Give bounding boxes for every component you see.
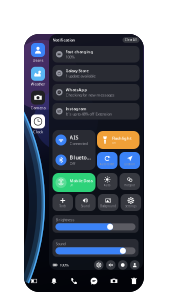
- staticText: WhatsApp: [65, 87, 87, 92]
- staticText: Bluetooth: [69, 154, 92, 161]
- staticText: Weather: [30, 81, 45, 87]
- button[interactable]: Fast charging: [52, 46, 139, 62]
- staticText: Fast charging: [65, 49, 93, 54]
- button[interactable]: Auto: [97, 173, 117, 190]
- button[interactable]: Flashlight: [97, 131, 139, 149]
- button[interactable]: Notifications: [44, 270, 64, 292]
- staticText: Clear All: [125, 38, 137, 42]
- staticText: Sound: [81, 204, 90, 208]
- staticText: On: [69, 183, 73, 187]
- button[interactable]: Users: [29, 43, 47, 63]
- staticText: 100%: [59, 262, 68, 268]
- staticText: Instagram: [65, 106, 86, 111]
- staticText: On: [112, 141, 116, 144]
- button[interactable]: Sound: [75, 194, 96, 211]
- button[interactable]: Torch: [52, 194, 73, 211]
- button[interactable]: Clear All: [122, 37, 139, 43]
- button[interactable]: Weather: [29, 67, 47, 87]
- staticText: Off: [69, 161, 75, 166]
- staticText: Mobile Data: [69, 178, 92, 183]
- button[interactable]: Background: [98, 194, 118, 211]
- button[interactable]: Autorotate: [97, 152, 117, 169]
- staticText: Checking for new messages: [65, 92, 114, 97]
- staticText: Notification: [52, 37, 75, 43]
- button[interactable]: Delete: [124, 270, 144, 292]
- button[interactable]: WhatsApp: [52, 84, 139, 100]
- staticText: Hotspot: [124, 183, 135, 187]
- button[interactable]: Bluetooth: [52, 150, 95, 170]
- staticText: Location: [124, 162, 135, 166]
- staticText: Auto: [104, 183, 111, 187]
- button[interactable]: Settings: [94, 260, 103, 270]
- staticText: Galaxy Store: [65, 68, 88, 73]
- staticText: Background: [100, 204, 116, 208]
- button[interactable]: Galaxy Store: [52, 65, 139, 81]
- staticText: Torch: [59, 204, 66, 208]
- button[interactable]: Account: [130, 260, 139, 270]
- button[interactable]: Hotspot: [119, 173, 140, 190]
- button[interactable]: AIS: [52, 130, 95, 150]
- button[interactable]: Location: [119, 152, 140, 169]
- staticText: It's up to 48% off Extension: [65, 111, 111, 116]
- button[interactable]: Camera: [104, 270, 124, 292]
- staticText: 100%: [65, 54, 74, 59]
- staticText: Connected: [69, 141, 87, 146]
- staticText: Autorotate: [100, 162, 115, 166]
- staticText: Camera: [30, 105, 45, 110]
- staticText: Sound: [55, 241, 65, 246]
- staticText: AIS: [69, 134, 78, 141]
- staticText: Users: [32, 57, 43, 63]
- button[interactable]: Instagram: [52, 103, 139, 119]
- staticText: Settings: [125, 204, 136, 208]
- staticText: Flashlight: [112, 136, 132, 141]
- button[interactable]: Clock: [29, 114, 47, 134]
- button[interactable]: Screen record: [118, 260, 127, 270]
- staticText: Brightness: [55, 217, 74, 222]
- button[interactable]: Mute: [106, 260, 115, 270]
- button[interactable]: Camera: [29, 91, 47, 110]
- button[interactable]: Settings: [121, 194, 141, 211]
- staticText: 1 update available: [65, 73, 95, 78]
- button[interactable]: Apps: [24, 270, 44, 292]
- button[interactable]: Messages: [84, 270, 104, 292]
- button[interactable]: Mobile Data: [52, 173, 95, 192]
- button[interactable]: Phone: [64, 270, 84, 292]
- staticText: Clock: [33, 129, 43, 134]
